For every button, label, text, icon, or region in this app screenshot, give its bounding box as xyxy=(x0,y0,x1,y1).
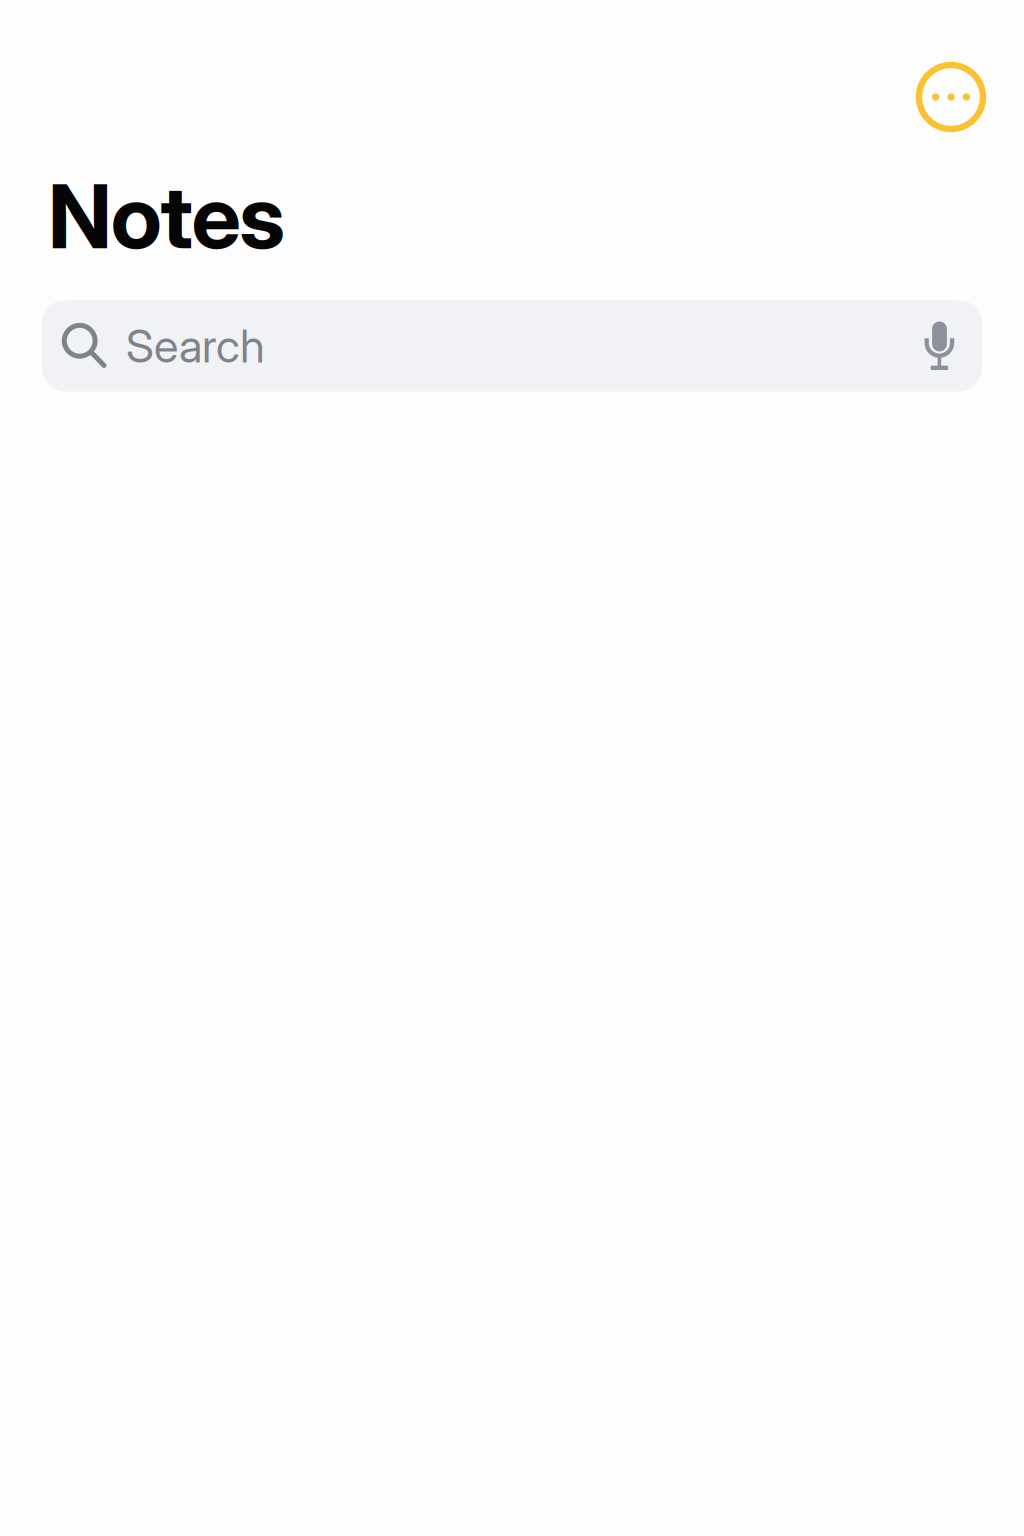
staticText: Search xyxy=(126,319,265,373)
staticText: Notes xyxy=(48,163,285,269)
button[interactable]: More xyxy=(916,62,986,132)
button[interactable]: Search xyxy=(42,300,924,391)
button[interactable]: Dictate xyxy=(924,300,982,391)
